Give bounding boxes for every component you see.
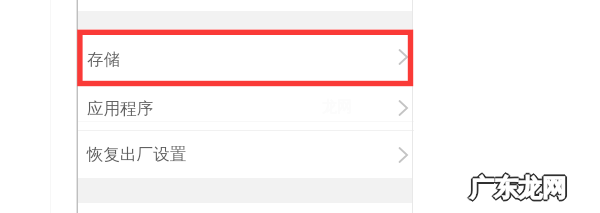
staticText: 广东龙网	[471, 172, 567, 202]
button[interactable]: 恢复出厂设置	[78, 131, 412, 178]
staticText: 存储	[87, 49, 120, 70]
staticText: 广东龙网	[470, 175, 566, 205]
staticText: 广东龙网	[472, 173, 568, 203]
staticText: 广东龙网	[469, 173, 565, 203]
staticText: 恢复出厂设置	[87, 144, 186, 165]
staticText: 广东龙网	[468, 173, 564, 203]
button[interactable]: 应用程序	[78, 85, 412, 131]
staticText: 广东龙网	[470, 173, 566, 203]
staticText: 应用程序	[87, 98, 153, 119]
button[interactable]: 存储	[78, 29, 412, 85]
staticText: 广东龙网	[469, 174, 565, 204]
staticText: 广东龙网	[470, 174, 566, 204]
staticText: 广东龙网	[470, 172, 566, 202]
staticText: 广东龙网	[470, 171, 566, 201]
staticText: 广东龙网	[471, 174, 567, 204]
staticText: 广东龙网	[469, 172, 565, 202]
staticText: 广东龙网	[471, 173, 567, 203]
